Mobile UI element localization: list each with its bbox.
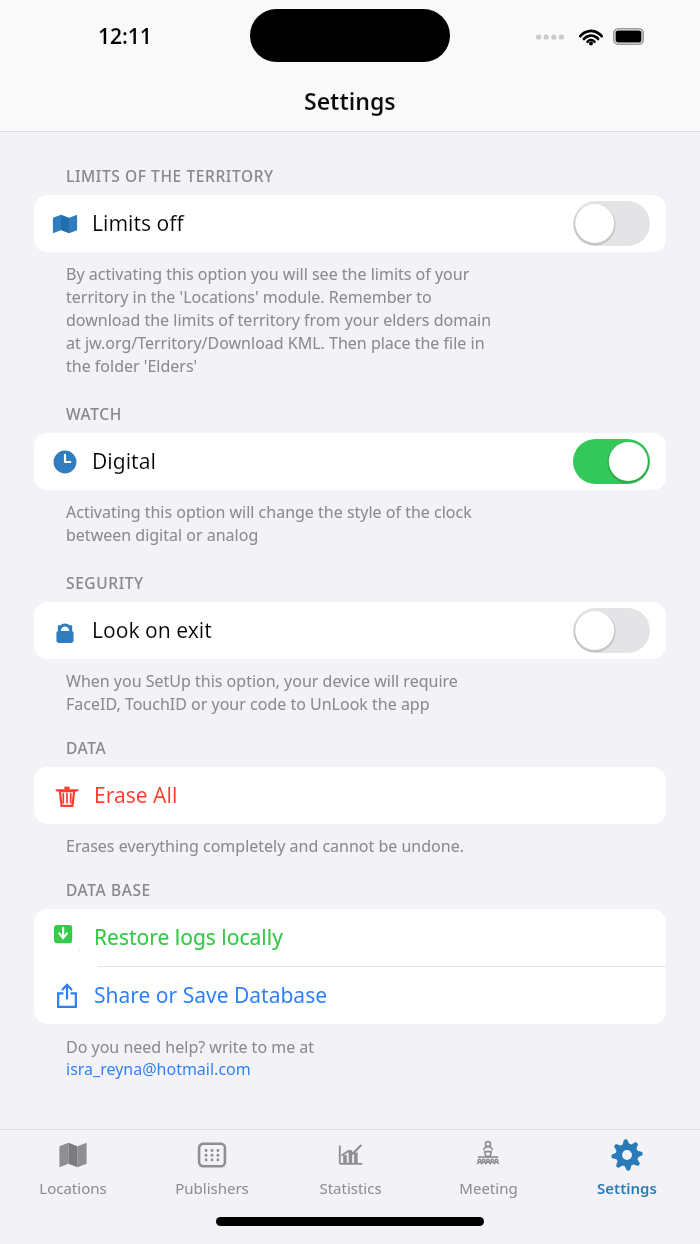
button[interactable]: Restore logs locally — [34, 909, 666, 966]
staticText: Do you need help? write to me at — [66, 1036, 315, 1058]
button[interactable]: Publishers — [147, 1132, 277, 1204]
staticText: WATCH — [66, 403, 122, 424]
staticText: Publishers — [175, 1178, 249, 1198]
button[interactable]: Share or Save Database — [34, 967, 666, 1024]
staticText: Meeting — [459, 1178, 518, 1198]
staticText: DATA — [66, 737, 107, 758]
staticText: 12:11 — [98, 22, 152, 51]
staticText: Limits off — [92, 209, 184, 238]
button[interactable]: Statistics — [285, 1132, 415, 1204]
button[interactable]: Digital — [34, 433, 666, 490]
staticText: DATA BASE — [66, 879, 151, 900]
staticText: isra_reyna@hotmail.com — [66, 1058, 251, 1080]
button[interactable]: Settings — [562, 1132, 692, 1204]
staticText: Restore logs locally — [94, 923, 283, 952]
staticText: Statistics — [319, 1178, 382, 1198]
button[interactable]: Locations — [8, 1132, 138, 1204]
staticText: When you SetUp this option, your device … — [66, 670, 458, 715]
staticText: Activating this option will change the s… — [66, 501, 472, 546]
button[interactable]: Limits off — [34, 195, 666, 252]
staticText: Locations — [39, 1178, 107, 1198]
staticText: Digital — [92, 447, 156, 476]
button[interactable]: On — [573, 439, 650, 484]
staticText: Look on exit — [92, 616, 212, 645]
staticText: By activating this option you will see t… — [66, 263, 492, 377]
staticText: Share or Save Database — [94, 981, 328, 1010]
staticText: Erases everything completely and cannot … — [66, 835, 464, 857]
button[interactable]: Meeting — [423, 1132, 553, 1204]
staticText: SEGURITY — [66, 572, 144, 593]
staticText: Erase All — [94, 781, 178, 810]
staticText: Settings — [304, 85, 396, 116]
button[interactable]: Erase All — [34, 767, 666, 824]
button[interactable]: Off — [573, 201, 650, 246]
staticText: Settings — [597, 1178, 657, 1198]
button[interactable]: Off — [573, 608, 650, 653]
button[interactable]: Look on exit — [34, 602, 666, 659]
staticText: LIMITS OF THE TERRITORY — [66, 165, 274, 186]
